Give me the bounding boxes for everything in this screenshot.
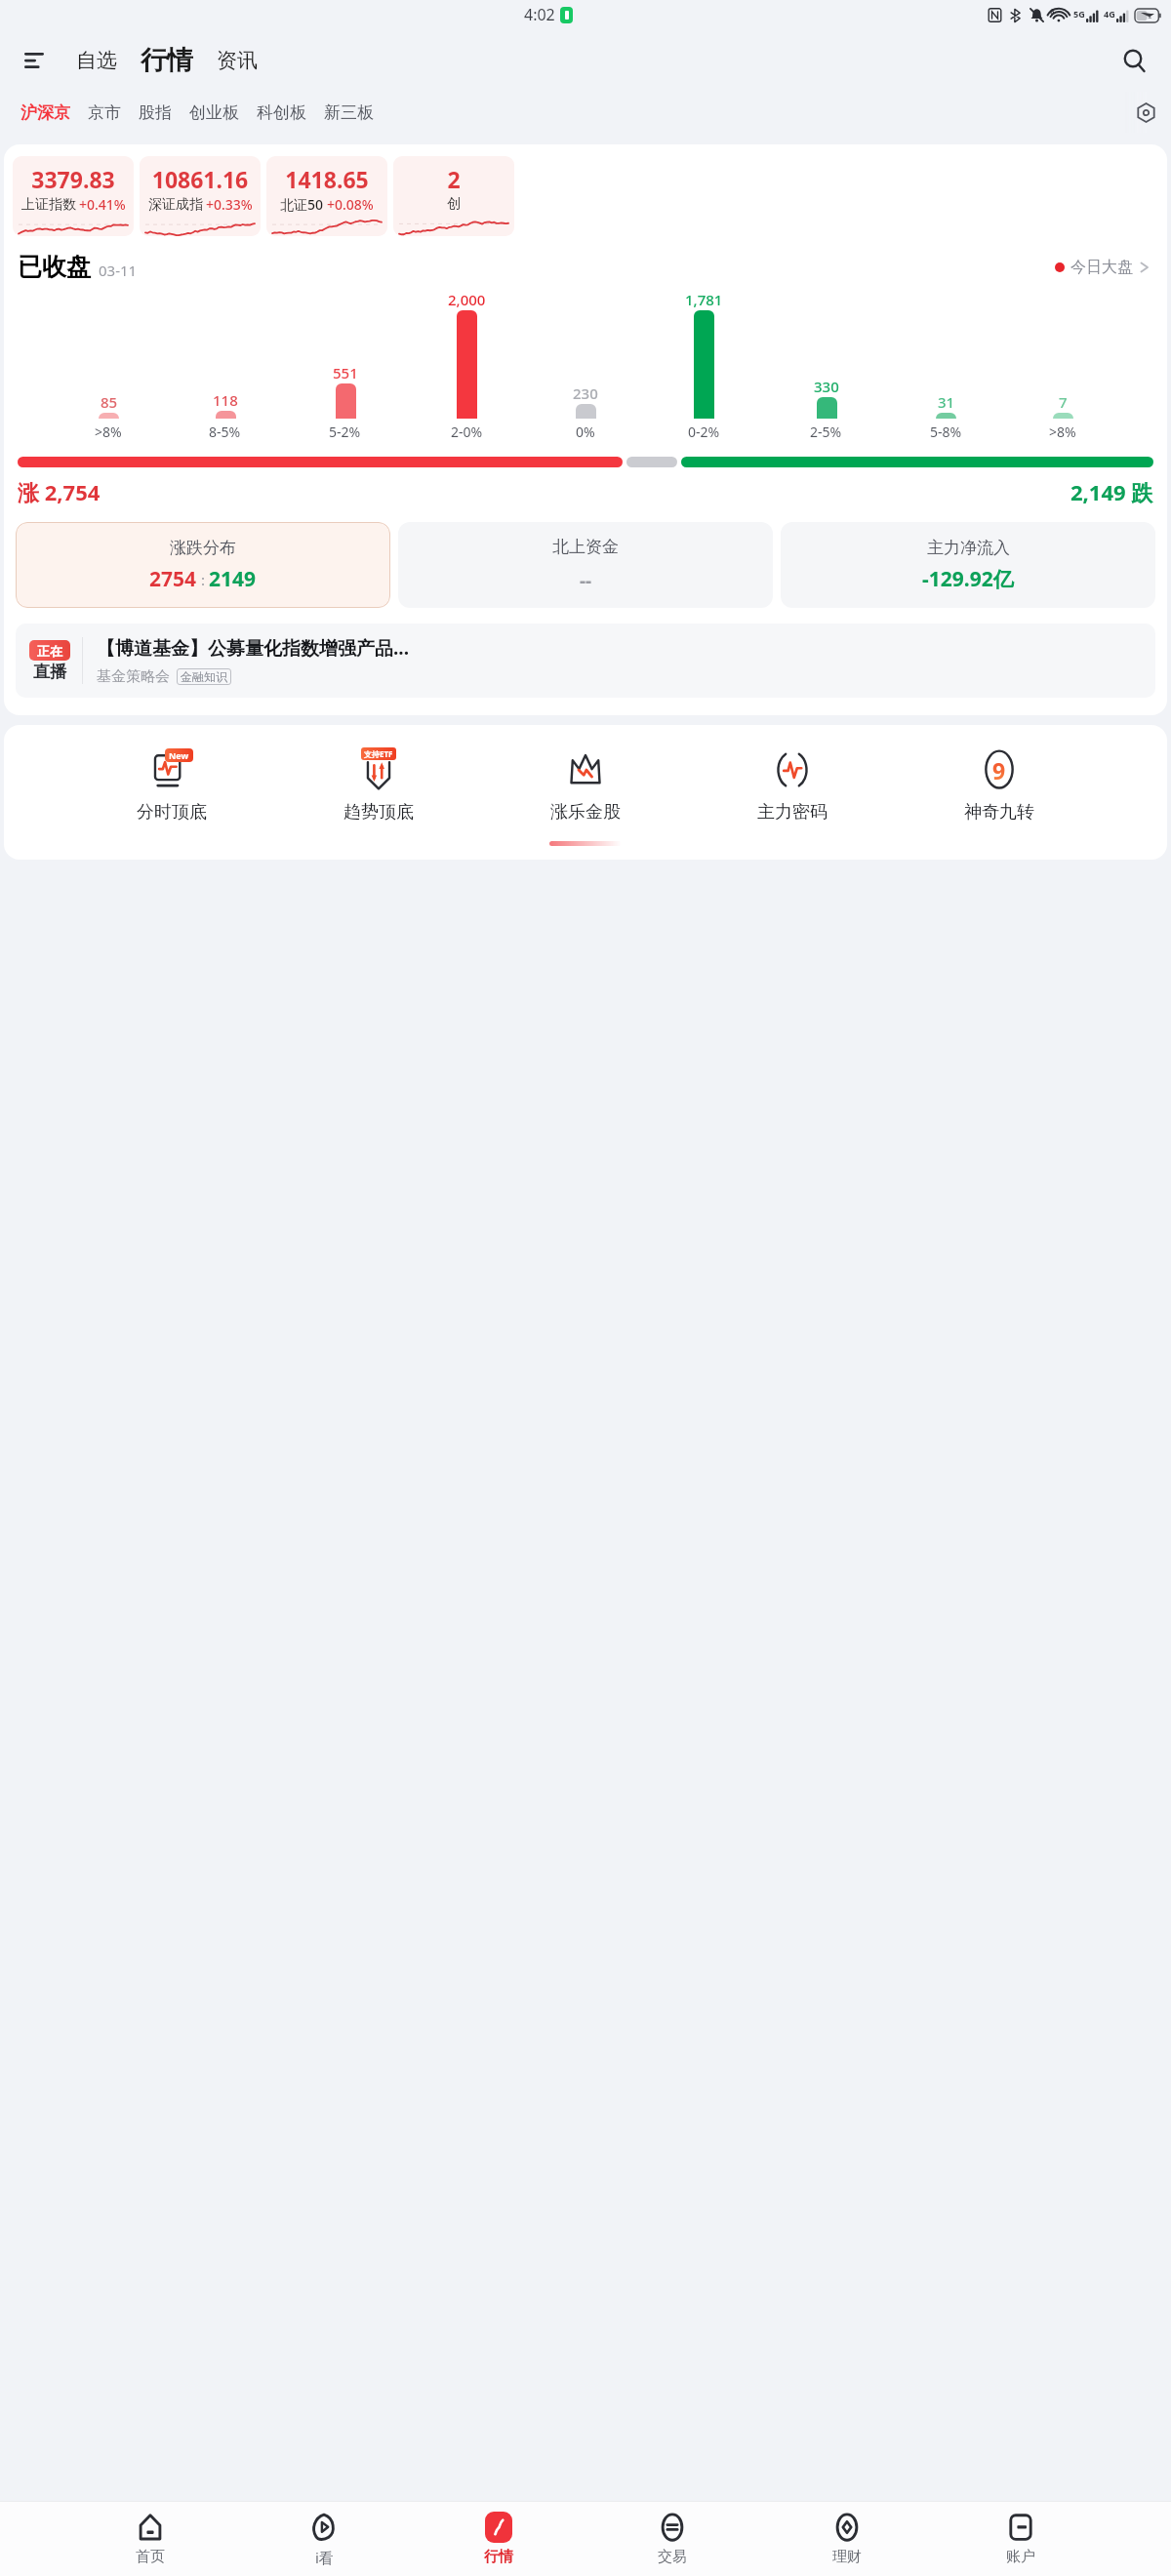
- staticText: 股指: [139, 102, 172, 123]
- button[interactable]: i看: [300, 2509, 348, 2570]
- button[interactable]: 3379.83: [13, 156, 134, 236]
- staticText: New: [169, 749, 189, 761]
- staticText: 金融知识: [181, 669, 227, 684]
- staticText: 主力密码: [757, 801, 828, 824]
- button[interactable]: 支持ETF: [340, 745, 418, 825]
- staticText: 2,149 跌: [1070, 477, 1153, 506]
- staticText: 直播: [33, 662, 66, 682]
- staticText: 6: [1050, 6, 1055, 17]
- staticText: 0-2%: [688, 423, 720, 441]
- button[interactable]: New: [133, 745, 211, 825]
- staticText: 2-0%: [451, 423, 483, 441]
- staticText: 涨乐金股: [550, 801, 621, 824]
- staticText: 10861.16: [140, 164, 261, 194]
- staticText: 创业板: [189, 102, 239, 123]
- button[interactable]: 沪深京: [12, 97, 79, 129]
- staticText: 行情: [484, 2548, 513, 2566]
- button[interactable]: 科创板: [248, 97, 315, 129]
- button[interactable]: 2: [393, 156, 514, 236]
- staticText: 5-2%: [329, 423, 361, 441]
- staticText: +0.33%: [206, 195, 253, 214]
- staticText: 北上资金: [552, 537, 619, 557]
- staticText: 2: [393, 164, 514, 194]
- staticText: +0.41%: [79, 195, 126, 214]
- staticText: 理财: [832, 2548, 862, 2566]
- staticText: 行情: [141, 44, 193, 77]
- staticText: 03-11: [99, 261, 138, 280]
- staticText: 趋势顶底: [343, 801, 414, 824]
- staticText: 主力净流入: [927, 538, 1010, 558]
- button[interactable]: 9: [960, 745, 1038, 825]
- button[interactable]: 首页: [126, 2509, 175, 2569]
- button[interactable]: 交易: [648, 2509, 697, 2569]
- staticText: 基金策略会: [97, 667, 170, 686]
- button[interactable]: 账户: [996, 2509, 1045, 2569]
- staticText: 涨跌分布: [170, 538, 236, 558]
- staticText: 支持ETF: [364, 748, 393, 759]
- staticText: 正在: [37, 643, 62, 659]
- button[interactable]: 主力密码: [753, 745, 831, 825]
- staticText: 3379.83: [13, 164, 134, 194]
- button[interactable]: Settings: [1130, 97, 1161, 128]
- staticText: 神奇九转: [964, 801, 1034, 824]
- staticText: >8%: [95, 423, 122, 441]
- staticText: 330: [814, 377, 839, 396]
- staticText: 沪深京: [20, 102, 70, 123]
- button[interactable]: 京市: [79, 97, 130, 129]
- staticText: 4G: [1104, 8, 1115, 20]
- staticText: 2,000: [448, 290, 486, 309]
- staticText: 230: [573, 383, 598, 403]
- staticText: 118: [213, 390, 238, 410]
- staticText: 4:02: [524, 4, 555, 25]
- staticText: 涨 2,754: [18, 477, 101, 506]
- staticText: 京市: [88, 102, 121, 123]
- staticText: +0.08%: [327, 195, 374, 214]
- staticText: -129.92亿: [922, 565, 1014, 593]
- staticText: >8%: [1049, 423, 1076, 441]
- staticText: 5-8%: [930, 423, 962, 441]
- staticText: 新三板: [324, 102, 374, 123]
- staticText: 今日大盘: [1070, 258, 1133, 277]
- button[interactable]: 创业板: [181, 97, 248, 129]
- staticText: --: [580, 568, 592, 593]
- staticText: 资讯: [217, 48, 258, 73]
- staticText: 【博道基金】公募量化指数增强产品...: [97, 635, 410, 661]
- button[interactable]: 自选: [70, 42, 123, 79]
- button[interactable]: 行情: [135, 41, 199, 80]
- staticText: 85: [101, 392, 118, 412]
- staticText: 2-5%: [810, 423, 842, 441]
- staticText: 创: [447, 195, 461, 213]
- button[interactable]: 理财: [823, 2509, 871, 2569]
- staticText: 9: [992, 755, 1006, 785]
- button[interactable]: 资讯: [211, 42, 263, 79]
- button[interactable]: 行情: [474, 2509, 523, 2569]
- button[interactable]: 股指: [130, 97, 181, 129]
- staticText: 北证50: [280, 195, 324, 214]
- staticText: 科创板: [257, 102, 306, 123]
- button[interactable]: 涨跌分布: [16, 522, 390, 608]
- staticText: 7: [1059, 392, 1068, 412]
- staticText: 首页: [136, 2548, 165, 2566]
- button[interactable]: 今日大盘: [1051, 254, 1153, 281]
- staticText: :: [197, 570, 209, 589]
- staticText: 2149: [209, 565, 257, 593]
- staticText: i看: [315, 2548, 334, 2567]
- button[interactable]: 涨乐金股: [546, 745, 625, 825]
- staticText: 0%: [576, 423, 595, 441]
- staticText: 31: [938, 392, 955, 412]
- button[interactable]: 正在: [16, 624, 1155, 698]
- button[interactable]: 主力净流入: [781, 522, 1155, 608]
- button[interactable]: 北上资金: [398, 522, 773, 608]
- button[interactable]: Menu: [16, 42, 53, 79]
- staticText: 8-5%: [209, 423, 241, 441]
- button[interactable]: 1418.65: [266, 156, 387, 236]
- staticText: 551: [333, 363, 358, 382]
- button[interactable]: 新三板: [315, 97, 383, 129]
- staticText: 账户: [1006, 2548, 1035, 2566]
- staticText: 深证成指: [148, 196, 203, 214]
- button[interactable]: Search: [1114, 41, 1153, 80]
- staticText: 自选: [76, 48, 117, 73]
- staticText: 分时顶底: [137, 801, 207, 824]
- staticText: 已收盘: [18, 252, 91, 282]
- button[interactable]: 10861.16: [140, 156, 261, 236]
